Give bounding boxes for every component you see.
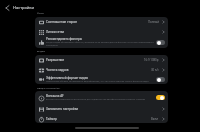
staticText: Когда в кадре обнаружены объекты, автома… xyxy=(46,41,154,47)
staticText: Вспышка кратковременно включается для по… xyxy=(46,98,146,101)
staticText: Рекомендовать фильтры xyxy=(46,37,83,41)
button[interactable]: Таймер xyxy=(35,114,168,123)
staticText: Вспышка AF xyxy=(46,94,64,98)
button[interactable]: Линии сетки xyxy=(35,27,168,36)
button[interactable]: Рекомендовать фильтры xyxy=(35,36,168,48)
staticText: ОБЩИЕ НАСТРОЙКИ xyxy=(37,87,61,90)
button[interactable]: Разрешение xyxy=(35,55,168,65)
button[interactable]: Toggle xyxy=(156,95,165,100)
staticText: Настройки xyxy=(13,5,34,10)
staticText: 16:9 1080p xyxy=(144,58,159,62)
button[interactable]: Toggle xyxy=(156,40,165,45)
button[interactable]: Соотношение сторон xyxy=(35,17,168,27)
staticText: Таймер xyxy=(46,117,57,121)
staticText: ФОТО xyxy=(37,12,44,15)
staticText: Частота кадров xyxy=(46,68,69,72)
button[interactable]: Вспышка AF xyxy=(35,91,168,104)
staticText: Линии сетки xyxy=(46,30,65,34)
staticText: Разрешение xyxy=(46,58,65,62)
staticText: 30 к/с xyxy=(151,68,159,72)
staticText: Уменьшение объёма, занимаемого видеофайл… xyxy=(46,80,149,83)
button[interactable]: Эффективный формат видео xyxy=(35,74,168,84)
staticText: Выкл xyxy=(151,117,159,121)
button[interactable]: Toggle xyxy=(156,77,165,82)
staticText: ВИДЕО xyxy=(37,50,46,53)
staticText: Эффективный формат видео xyxy=(46,76,89,80)
staticText: Соотношение сторон xyxy=(46,20,78,24)
button[interactable]: Запомнить настройки xyxy=(35,104,168,114)
other: Back xyxy=(3,4,11,12)
staticText: Полный xyxy=(148,20,159,24)
button[interactable]: Back xyxy=(3,2,34,13)
staticText: Запомнить настройки xyxy=(46,107,79,111)
button[interactable]: Частота кадров xyxy=(35,65,168,74)
